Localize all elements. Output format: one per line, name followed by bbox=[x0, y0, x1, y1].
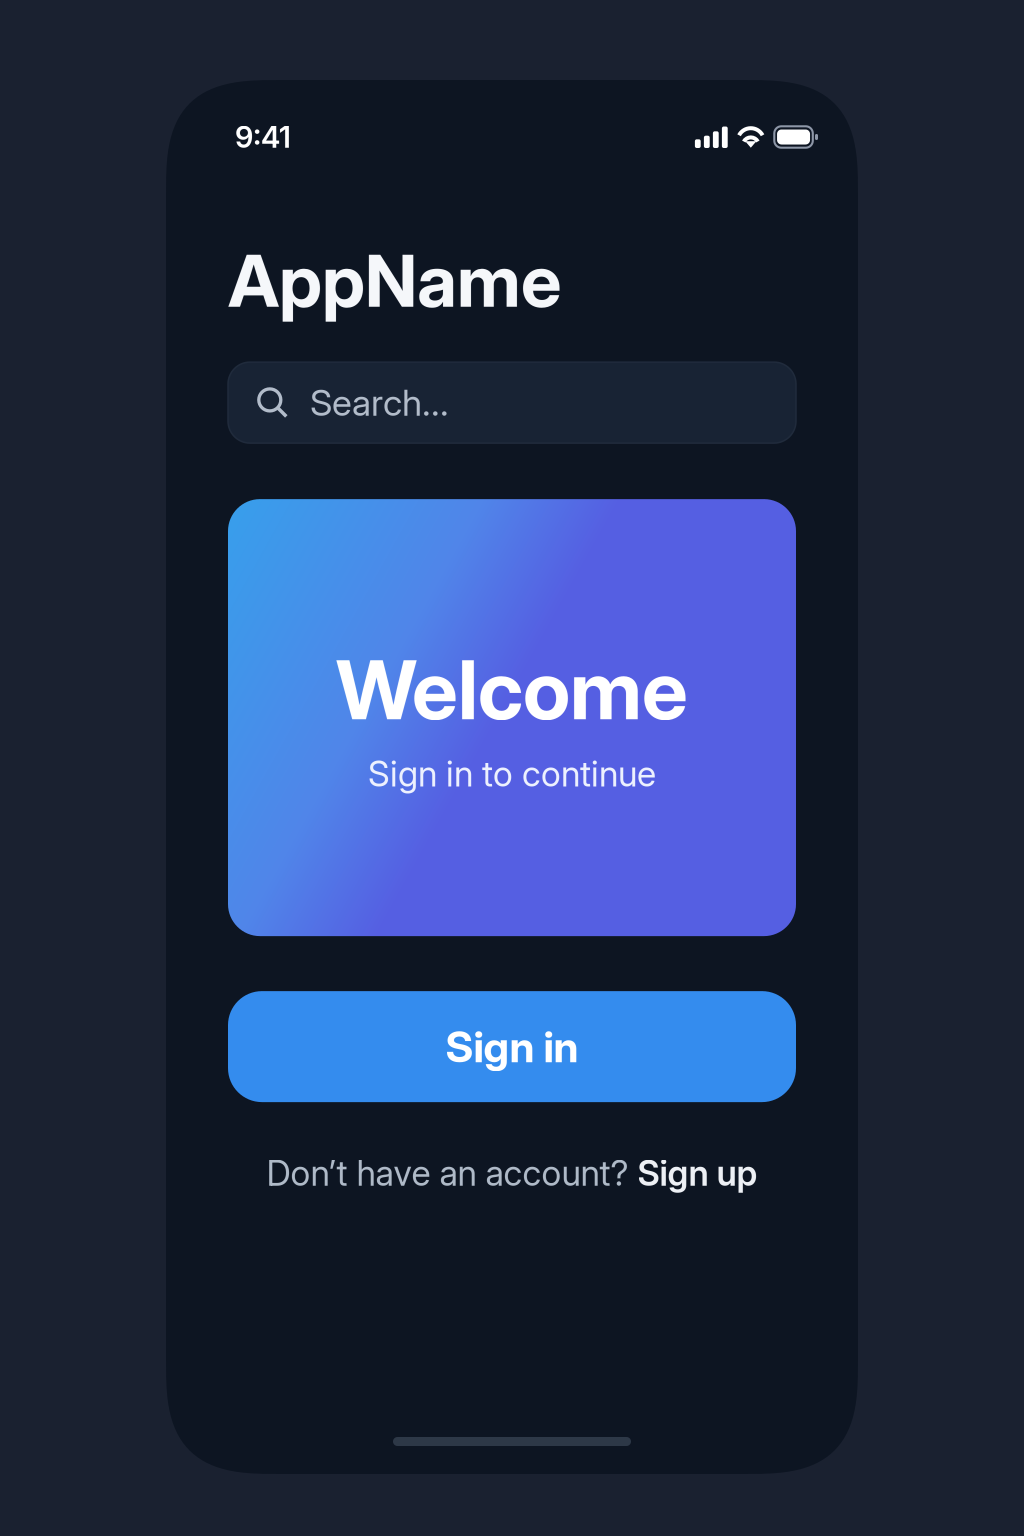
staticText: Sign in bbox=[445, 1021, 578, 1072]
staticText: Search... bbox=[310, 381, 449, 424]
button[interactable]: Search... bbox=[228, 362, 796, 443]
button[interactable]: Sign in bbox=[228, 991, 796, 1102]
staticText: 9:41 bbox=[235, 119, 291, 155]
staticText: Don’t have an account? bbox=[266, 1152, 637, 1194]
staticText: Sign up bbox=[637, 1152, 757, 1194]
staticText: Sign in to continue bbox=[368, 753, 656, 795]
staticText: AppName bbox=[228, 237, 561, 324]
staticText: Welcome bbox=[336, 640, 688, 739]
button[interactable]: Don’t have an account? bbox=[228, 1152, 796, 1194]
